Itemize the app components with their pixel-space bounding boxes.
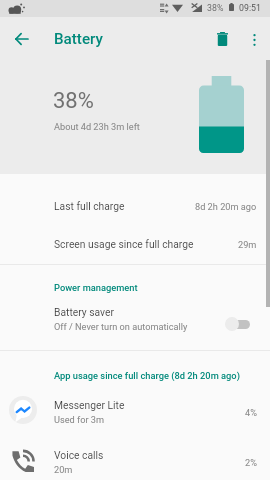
button[interactable]: More options (239, 24, 270, 55)
staticText: 09:51 (239, 3, 261, 13)
button[interactable]: Screen usage since full charge (0, 225, 270, 263)
staticText: Voice calls (54, 449, 104, 461)
staticText: App usage since full charge (8d 2h 20m a… (54, 370, 240, 381)
staticText: About 4d 23h 3m left (54, 121, 140, 132)
button[interactable]: Delete (204, 21, 240, 57)
staticText: Last full charge (54, 200, 125, 212)
button[interactable]: Navigate up (3, 21, 39, 57)
staticText: 4% (245, 407, 257, 418)
button[interactable]: Last full charge (0, 187, 270, 225)
button[interactable]: Battery saver switch, off (225, 315, 251, 333)
button[interactable]: Messenger Lite (0, 389, 270, 435)
staticText: 38% (207, 3, 224, 13)
button[interactable]: Battery saver (0, 301, 270, 336)
staticText: 29m (238, 239, 257, 250)
staticText: 20m (54, 464, 73, 475)
staticText: Power management (54, 282, 138, 293)
staticText: Screen usage since full charge (54, 238, 194, 250)
staticText: 38% (53, 88, 94, 114)
staticText: Used for 3m (54, 414, 105, 425)
button[interactable]: Voice calls (0, 439, 270, 480)
staticText: 8d 2h 20m ago (195, 201, 257, 212)
staticText: Battery saver (54, 306, 114, 318)
staticText: 2% (245, 457, 257, 468)
staticText: Off / Never turn on automatically (54, 321, 188, 332)
staticText: Battery (54, 30, 103, 48)
staticText: Messenger Lite (54, 399, 125, 411)
